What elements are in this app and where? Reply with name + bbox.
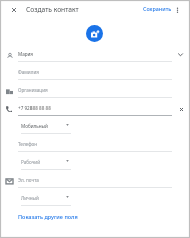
staticText: Мария: [18, 51, 34, 57]
button[interactable]: Close: [8, 4, 20, 16]
button[interactable]: Expand name fields: [175, 49, 186, 60]
staticText: Эл. почта: [18, 177, 39, 183]
button[interactable]: More options: [171, 3, 183, 15]
staticText: Мобильный: [21, 123, 48, 129]
staticText: Телефон: [18, 141, 38, 147]
button: Создать контакт: [24, 5, 77, 14]
staticText: Фамилия: [18, 69, 39, 75]
button[interactable]: Clear phone number: [176, 104, 186, 114]
staticText: Личный: [21, 195, 39, 201]
staticText: +7 928: [18, 105, 33, 111]
button[interactable]: Add photo: [86, 25, 103, 42]
staticText: Создать контакт: [26, 5, 79, 14]
staticText: Организация: [18, 87, 48, 93]
button[interactable]: Показать другие поля: [16, 210, 82, 222]
staticText: Рабочий: [21, 159, 41, 165]
staticText: Показать другие поля: [18, 213, 78, 220]
staticText: Сохранить: [143, 5, 172, 12]
staticText: 888 88 88: [30, 105, 51, 111]
button[interactable]: Сохранить: [140, 2, 171, 16]
